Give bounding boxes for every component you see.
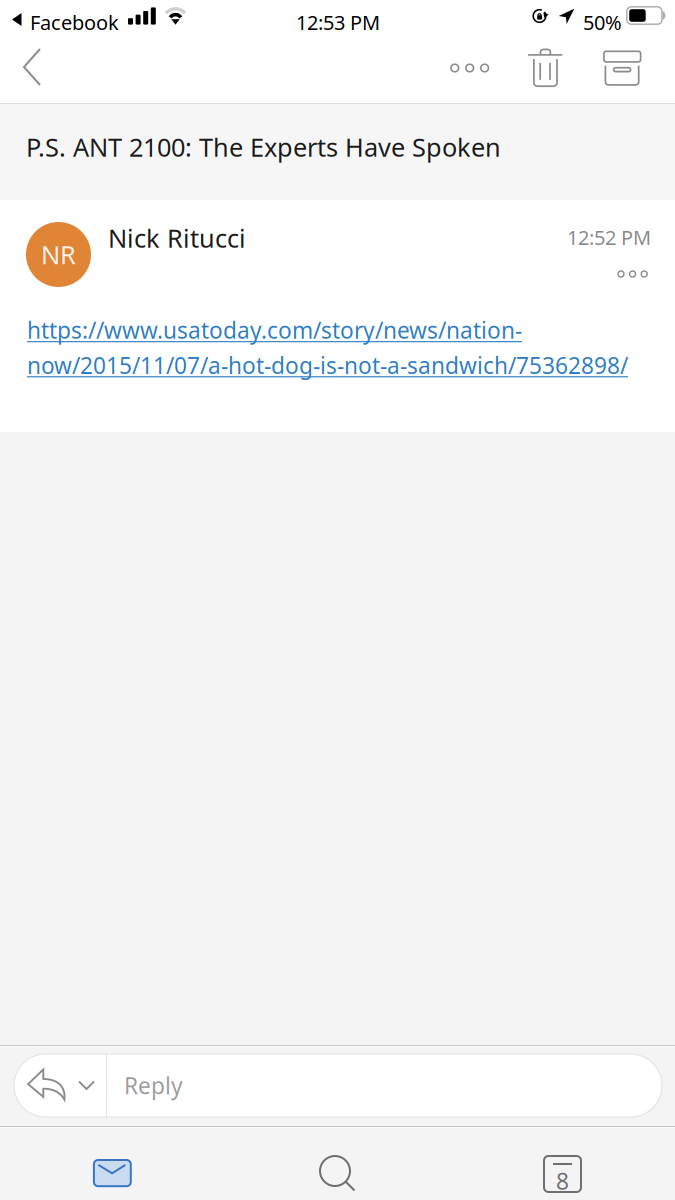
staticText: Facebook <box>30 9 119 36</box>
button[interactable]: Message actions <box>609 261 656 287</box>
staticText: NR <box>41 238 76 271</box>
staticText: Nick Ritucci <box>108 221 246 255</box>
staticText: 8 <box>556 1166 569 1196</box>
button[interactable]: Archive <box>588 40 658 104</box>
staticText: 50% <box>583 9 622 36</box>
button[interactable]: Calendar <box>450 1126 675 1200</box>
button[interactable]: More <box>434 40 516 104</box>
staticText: P.S. ANT 2100: The Experts Have Spoken <box>26 130 501 164</box>
staticText: 12:52 PM <box>567 224 651 251</box>
button[interactable]: Reply <box>106 1054 662 1117</box>
staticText: Reply <box>124 1070 183 1100</box>
staticText: 12:53 PM <box>296 9 380 36</box>
button[interactable]: https://www.usatoday.com/story/news/nati… <box>27 315 657 380</box>
button[interactable]: Delete <box>517 40 587 104</box>
button[interactable]: Mail <box>0 1126 225 1200</box>
button[interactable]: Search <box>225 1126 450 1200</box>
staticText: https://www.usatoday.com/story/news/nati… <box>27 315 628 380</box>
button[interactable]: Back <box>0 40 58 104</box>
button[interactable]: Reply options <box>14 1054 106 1117</box>
